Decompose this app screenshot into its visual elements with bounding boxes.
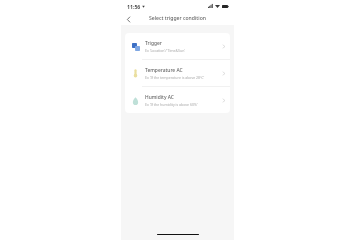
staticText: Select trigger condition xyxy=(149,15,206,22)
staticText: Trigger xyxy=(145,40,162,47)
button[interactable]: Back xyxy=(123,14,133,24)
staticText: Ex 'If the temperature is above 28℃' xyxy=(145,75,205,80)
staticText: Ex 'Location'/'Time&Sun' xyxy=(145,48,186,53)
staticText: Ex 'If the humidity is above 60%' xyxy=(145,102,198,107)
staticText: Temperature AC xyxy=(145,67,183,74)
button[interactable]: Humidity AC xyxy=(125,87,230,113)
staticText: Humidity AC xyxy=(145,94,174,101)
button[interactable]: Temperature AC xyxy=(125,60,230,86)
button[interactable]: Trigger xyxy=(125,33,230,59)
staticText: 11:56 xyxy=(127,3,141,10)
